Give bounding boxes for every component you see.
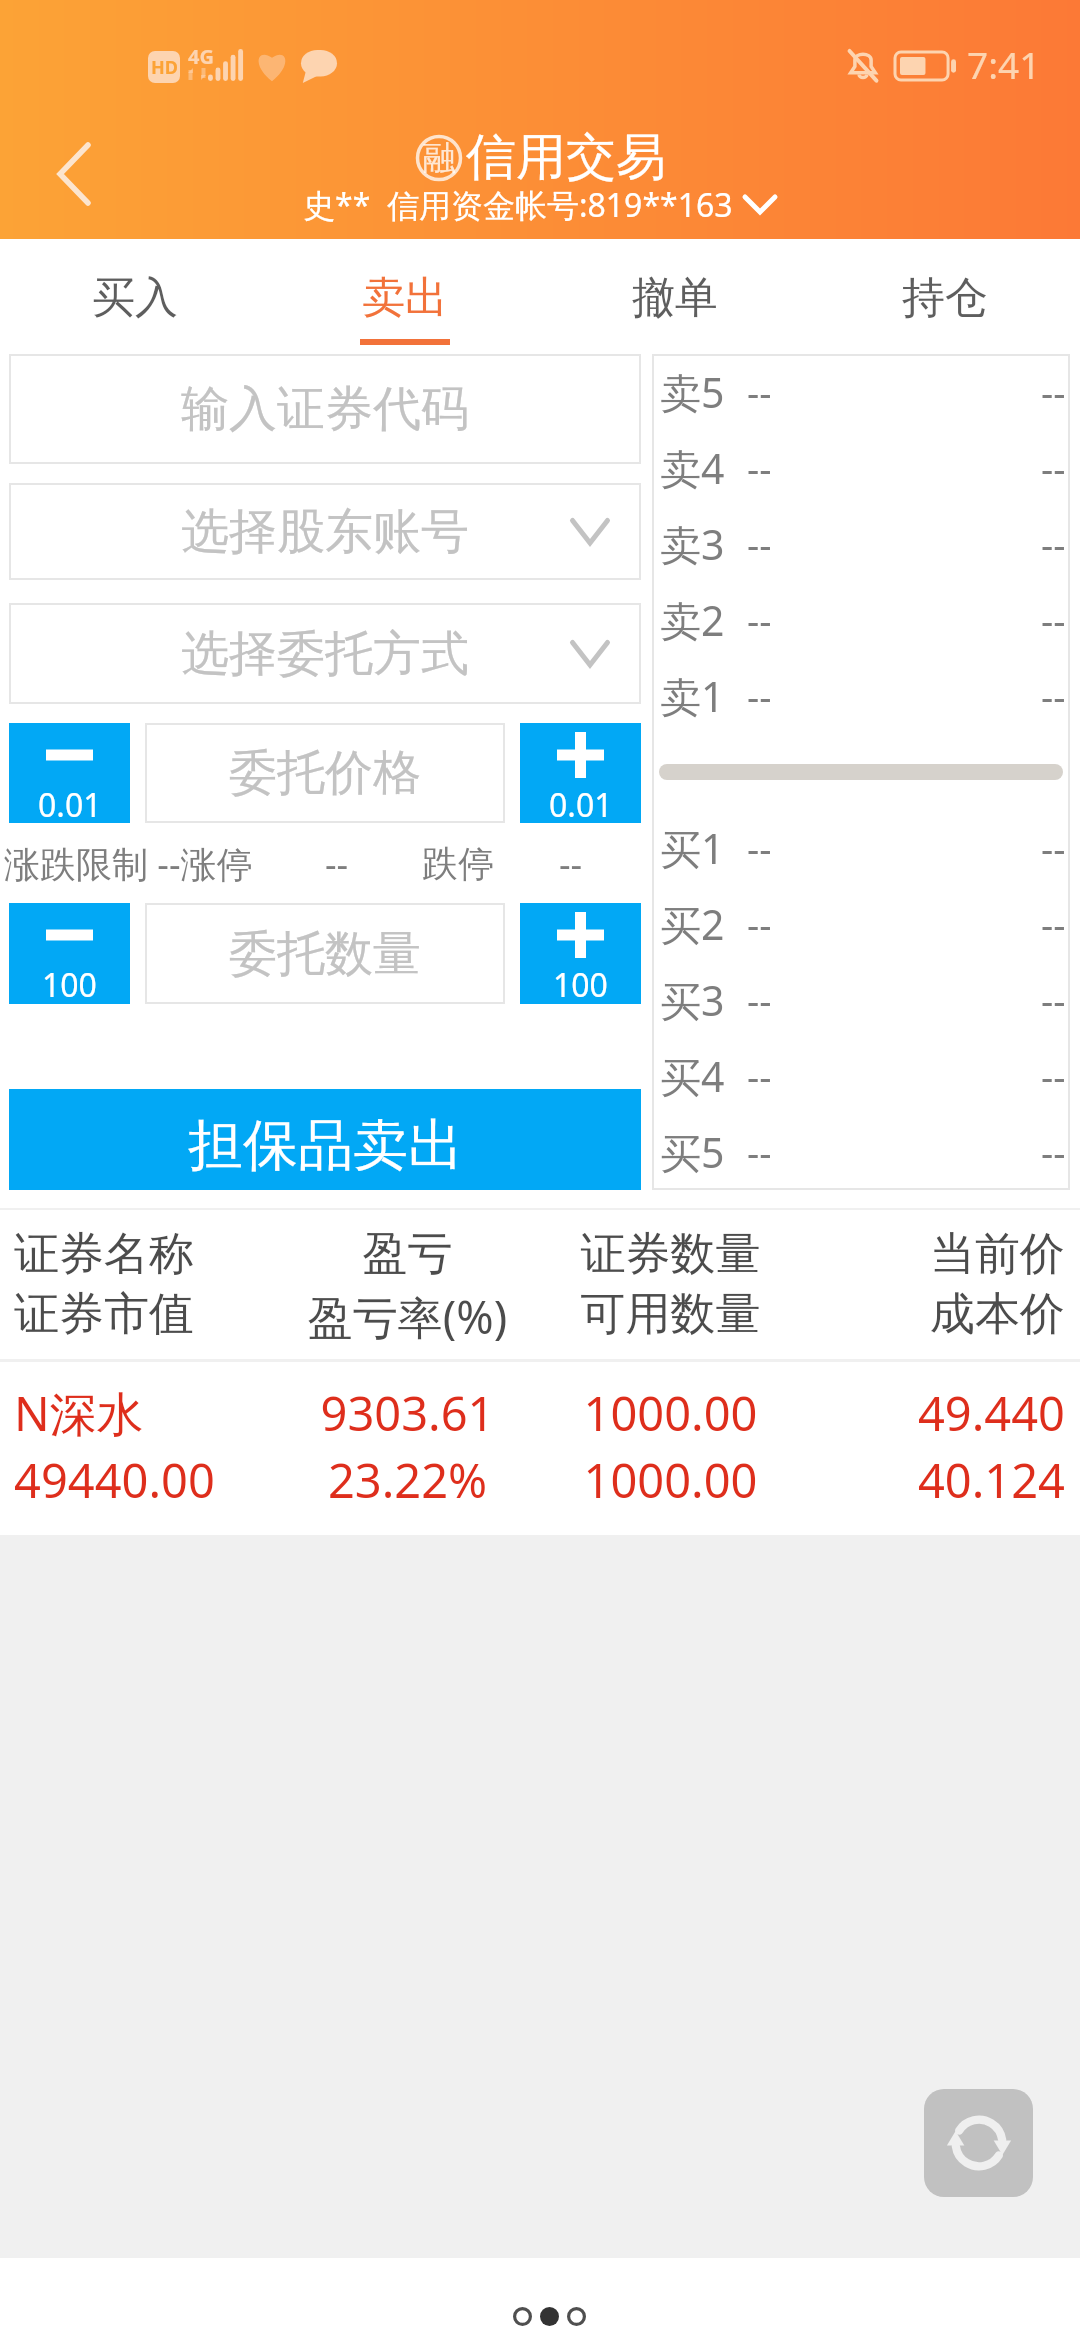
staticText: 买入 — [92, 271, 178, 325]
button[interactable]: 买1 — [652, 810, 1070, 886]
staticText: 担保品卖出 — [188, 1111, 463, 1180]
staticText: 买2 — [660, 896, 725, 952]
button[interactable]: 卖3 — [652, 506, 1070, 582]
button[interactable]: Increase by 100 — [520, 903, 641, 1004]
button[interactable]: 委托数量 — [145, 903, 505, 1004]
staticText: 史** 信用资金帐号:819**163 — [303, 183, 733, 227]
staticText: 100 — [553, 963, 608, 1007]
button[interactable]: 买入 — [0, 239, 270, 354]
staticText: -- — [1041, 594, 1066, 646]
staticText: -- — [559, 839, 583, 888]
button[interactable]: 卖2 — [652, 582, 1070, 658]
staticText: 9303.61 — [276, 1381, 539, 1445]
staticText: -- — [325, 839, 349, 888]
button[interactable]: Home — [536, 2296, 563, 2336]
staticText: -- — [1041, 974, 1066, 1026]
staticText: 选择委托方式 — [181, 624, 469, 684]
staticText: 49440.00 — [14, 1448, 276, 1512]
button[interactable]: Recent apps — [509, 2296, 536, 2336]
button[interactable]: 卖5 — [652, 354, 1070, 430]
staticText: 盈亏 — [276, 1226, 539, 1283]
button[interactable]: Refresh — [924, 2089, 1033, 2197]
staticText: -- — [747, 594, 772, 646]
staticText: 0.01 — [38, 783, 102, 827]
staticText: 卖2 — [660, 592, 725, 648]
button[interactable]: Decrease by 100 — [9, 903, 130, 1004]
staticText: 买1 — [660, 820, 725, 876]
button[interactable]: 卖出 — [270, 239, 540, 354]
staticText: 盈亏率(%) — [276, 1286, 539, 1347]
staticText: 证券数量 — [539, 1226, 802, 1283]
button[interactable]: 买3 — [652, 962, 1070, 1038]
staticText: 卖5 — [660, 364, 725, 420]
staticText: 选择股东账号 — [181, 502, 469, 562]
staticText: 买4 — [660, 1048, 725, 1104]
staticText: 证券市值 — [14, 1286, 276, 1343]
staticText: 融 — [423, 137, 456, 179]
staticText: -- — [1041, 518, 1066, 570]
button[interactable]: Decrease by 0.01 — [9, 723, 130, 823]
button[interactable]: Back — [28, 129, 118, 219]
staticText: 100 — [42, 963, 97, 1007]
button[interactable]: 卖4 — [652, 430, 1070, 506]
staticText: 卖出 — [362, 271, 448, 325]
button[interactable]: 选择股东账号 — [9, 483, 641, 580]
staticText: -- — [747, 974, 772, 1026]
staticText: -- — [747, 898, 772, 950]
staticText: -- — [747, 1050, 772, 1102]
staticText: 买3 — [660, 972, 725, 1028]
staticText: 委托价格 — [229, 743, 421, 803]
button[interactable]: 输入证券代码 — [9, 354, 641, 464]
staticText: 7:41 — [967, 39, 1041, 89]
button[interactable]: 委托价格 — [145, 723, 505, 823]
button[interactable]: 持仓 — [810, 239, 1080, 354]
staticText: -- — [747, 518, 772, 570]
staticText: -- — [1041, 442, 1066, 494]
button[interactable]: 买4 — [652, 1038, 1070, 1114]
staticText: 委托数量 — [229, 924, 421, 984]
staticText: -- — [1041, 898, 1066, 950]
staticText: -- — [747, 1126, 772, 1178]
staticText: 输入证券代码 — [181, 379, 469, 439]
staticText: -- — [1041, 1126, 1066, 1178]
button[interactable]: 买5 — [652, 1114, 1070, 1190]
staticText: -- — [1041, 1050, 1066, 1102]
staticText: HD — [151, 55, 178, 80]
staticText: N深水 — [14, 1381, 276, 1445]
staticText: 信用交易 — [466, 126, 666, 189]
staticText: 49.440 — [802, 1381, 1065, 1445]
staticText: 证券名称 — [14, 1226, 276, 1283]
staticText: -- — [747, 822, 772, 874]
button[interactable]: N深水 — [0, 1362, 1080, 1535]
staticText: -- — [1041, 822, 1066, 874]
button[interactable]: Back — [563, 2296, 590, 2336]
staticText: 40.124 — [802, 1448, 1065, 1512]
staticText: -- — [1041, 670, 1066, 722]
staticText: 买5 — [660, 1124, 725, 1180]
button[interactable]: 撤单 — [540, 239, 810, 354]
staticText: 23.22% — [276, 1448, 539, 1512]
staticText: 跌停 — [422, 841, 494, 886]
staticText: 卖3 — [660, 516, 725, 572]
staticText: 1000.00 — [539, 1381, 802, 1445]
button[interactable]: Increase by 0.01 — [520, 723, 641, 823]
staticText: -- — [1041, 366, 1066, 418]
button[interactable]: 选择委托方式 — [9, 603, 641, 704]
staticText: 撤单 — [632, 271, 718, 325]
staticText: 1000.00 — [539, 1448, 802, 1512]
staticText: 4G — [188, 43, 214, 70]
staticText: 当前价 — [802, 1226, 1065, 1283]
button[interactable]: 买2 — [652, 886, 1070, 962]
staticText: -- — [747, 366, 772, 418]
staticText: 成本价 — [802, 1286, 1065, 1343]
staticText: 卖1 — [660, 668, 725, 724]
staticText: 可用数量 — [539, 1286, 802, 1343]
staticText: -- — [747, 670, 772, 722]
button[interactable]: 担保品卖出 — [9, 1089, 641, 1190]
button[interactable]: 卖1 — [652, 658, 1070, 734]
staticText: 持仓 — [902, 271, 988, 325]
staticText: 卖4 — [660, 440, 725, 496]
staticText: 0.01 — [549, 783, 613, 827]
staticText: 涨跌限制 --涨停 — [4, 839, 253, 888]
staticText: -- — [747, 442, 772, 494]
